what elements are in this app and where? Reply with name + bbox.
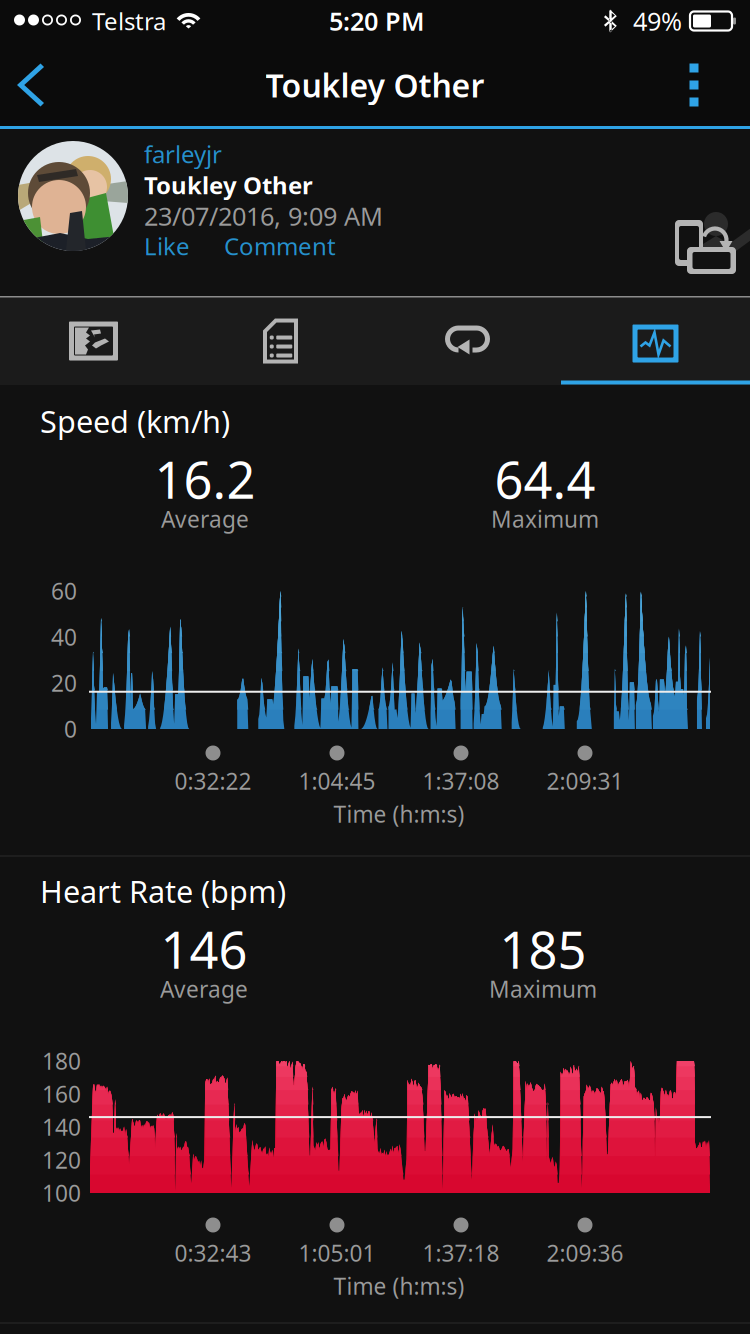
staticText: 5:20 PM xyxy=(329,4,425,38)
staticText: farleyjr xyxy=(144,138,222,170)
staticText: 100 xyxy=(42,1178,81,1208)
staticText: 0:32:22 xyxy=(174,766,251,796)
staticText: 140 xyxy=(42,1112,81,1142)
staticText: Average xyxy=(161,504,249,534)
staticText: 40 xyxy=(51,622,77,652)
staticText: 0 xyxy=(64,714,77,744)
staticText: 120 xyxy=(42,1145,81,1175)
staticText: 146 xyxy=(160,915,247,983)
staticText: 185 xyxy=(499,915,586,983)
staticText: Average xyxy=(160,974,248,1004)
staticText: Toukley Other xyxy=(265,64,484,106)
staticText: 2:09:36 xyxy=(546,1238,623,1268)
button[interactable]: farleyjr xyxy=(144,138,222,170)
staticText: Maximum xyxy=(489,974,597,1004)
staticText: 1:05:01 xyxy=(298,1238,375,1268)
staticText: 16.2 xyxy=(154,445,255,513)
staticText: Comment xyxy=(224,230,336,262)
staticText: 1:04:45 xyxy=(298,766,375,796)
staticText: Time (h:m:s) xyxy=(333,799,464,829)
button[interactable]: Charts xyxy=(561,297,750,384)
button[interactable]: Details xyxy=(187,297,374,384)
button[interactable]: Comment xyxy=(224,230,336,262)
button[interactable]: Laps xyxy=(374,297,561,384)
staticText: 160 xyxy=(42,1079,81,1109)
staticText: 180 xyxy=(42,1046,81,1076)
staticText: 20 xyxy=(51,668,77,698)
button[interactable]: Map xyxy=(0,297,187,384)
staticText: Time (h:m:s) xyxy=(333,1271,464,1301)
button[interactable]: Like xyxy=(144,230,190,262)
staticText: 49% xyxy=(633,4,682,38)
staticText: Like xyxy=(144,230,190,262)
staticText: Heart Rate (bpm) xyxy=(40,871,286,911)
staticText: 64.4 xyxy=(494,445,595,513)
button[interactable]: More options xyxy=(638,43,750,126)
staticText: 23/07/2016, 9:09 AM xyxy=(144,199,383,233)
staticText: Telstra xyxy=(92,5,166,37)
staticText: Maximum xyxy=(491,504,599,534)
staticText: 1:37:08 xyxy=(422,766,499,796)
staticText: Toukley Other xyxy=(144,169,313,201)
staticText: 1:37:18 xyxy=(422,1238,499,1268)
button[interactable]: Back xyxy=(0,43,78,126)
staticText: 60 xyxy=(51,576,77,606)
staticText: 0:32:43 xyxy=(174,1238,251,1268)
staticText: 2:09:31 xyxy=(546,766,623,796)
staticText: Speed (km/h) xyxy=(40,401,230,441)
button[interactable]: Share to device xyxy=(675,212,750,292)
